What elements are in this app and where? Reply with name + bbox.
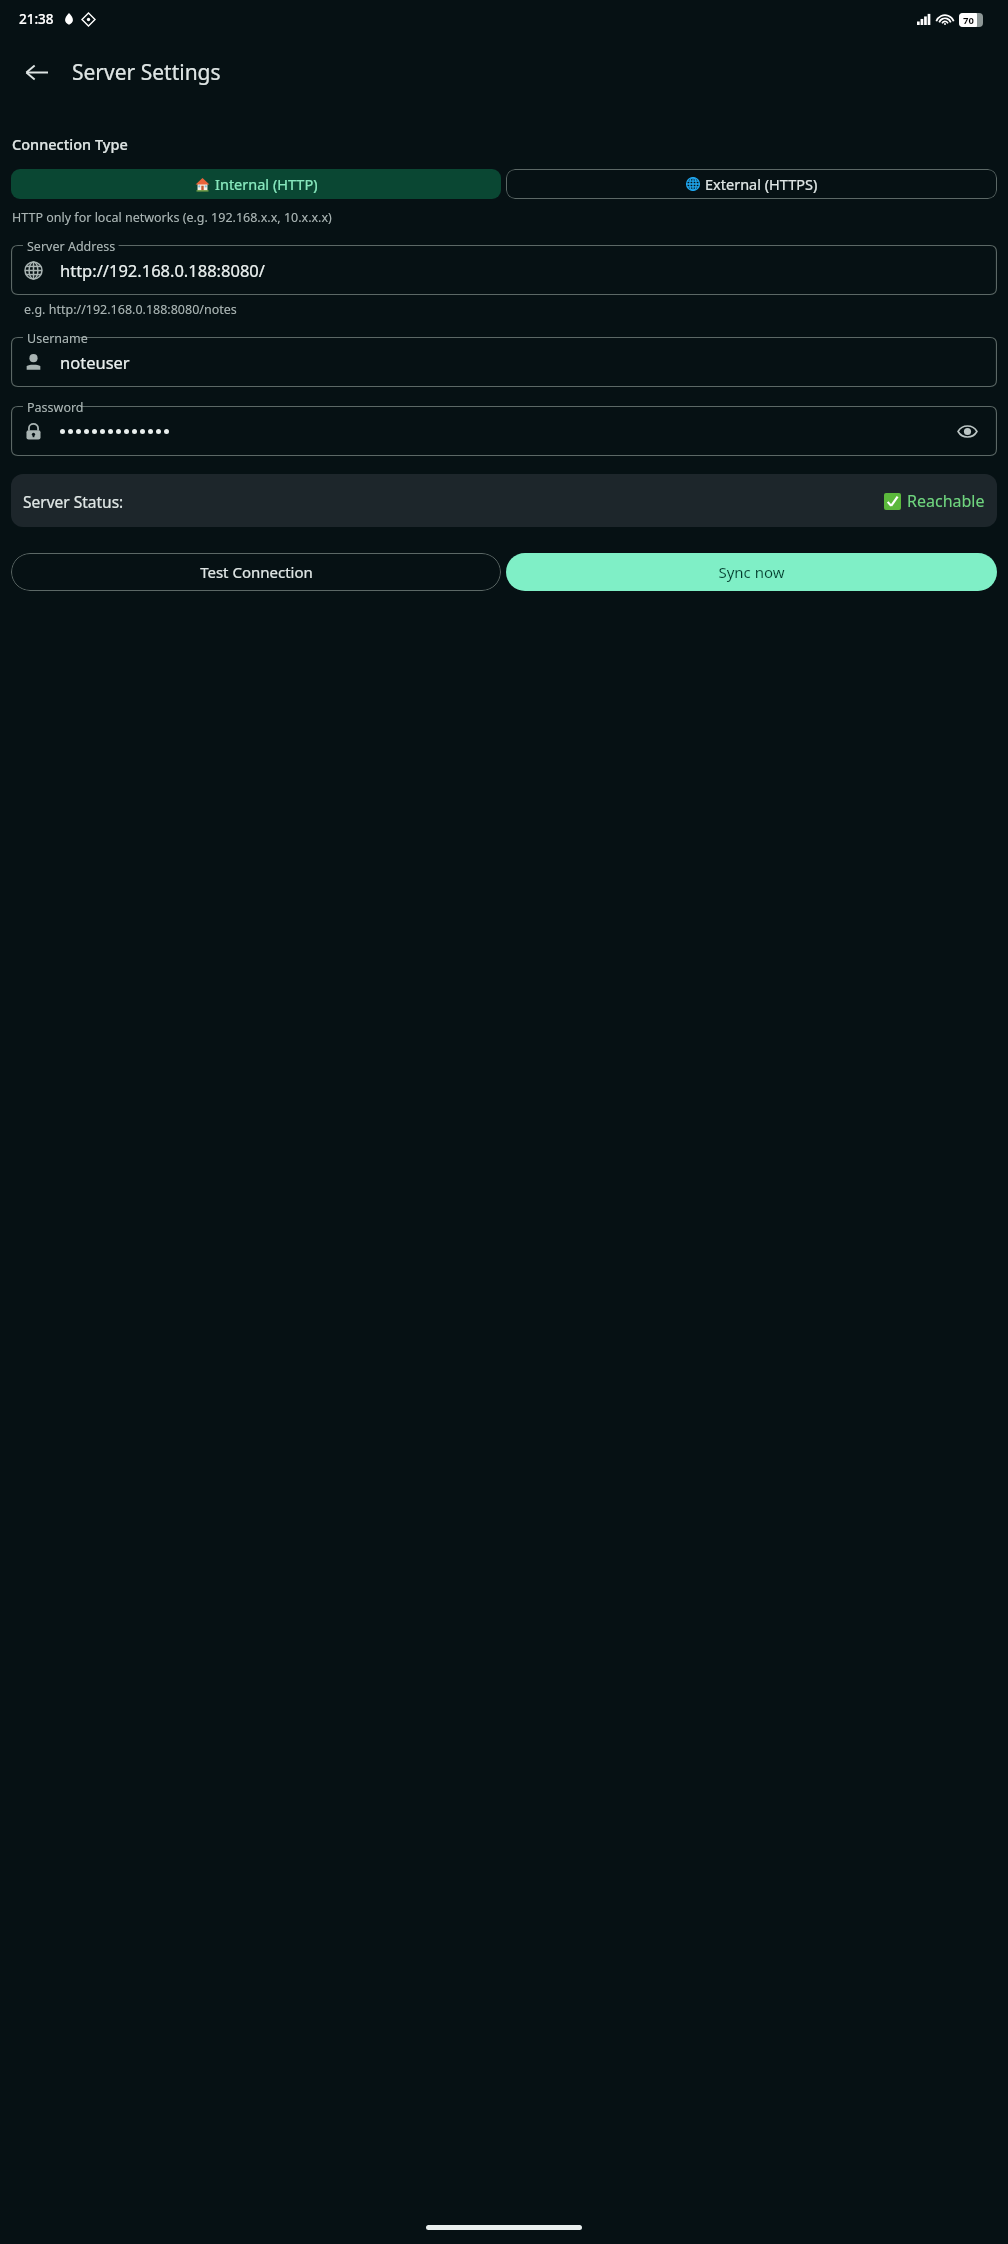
staticText: 70 (963, 14, 974, 27)
staticText: Reachable (907, 490, 985, 512)
button[interactable]: Back (12, 48, 60, 96)
staticText: Server Status: (23, 491, 124, 512)
staticText: Server Address (27, 238, 116, 255)
staticText: Test Connection (200, 562, 313, 582)
button[interactable]: Show password (950, 414, 984, 448)
staticText: Server Settings (72, 58, 221, 87)
staticText: Internal (HTTP) (215, 174, 318, 194)
staticText: 21:38 (19, 10, 54, 28)
button[interactable]: Sync now (506, 553, 997, 591)
staticText: Connection Type (12, 134, 128, 154)
staticText: http://192.168.0.188:8080/ (60, 259, 265, 281)
button[interactable]: External (HTTPS) (506, 169, 997, 199)
staticText: Password (27, 399, 84, 416)
staticText: Sync now (718, 562, 785, 582)
staticText: Username (27, 330, 88, 347)
button[interactable]: Internal (HTTP) (11, 169, 501, 199)
button[interactable]: Server Status: (11, 474, 997, 527)
staticText: External (HTTPS) (705, 174, 818, 194)
button[interactable]: Test Connection (11, 553, 501, 591)
staticText: HTTP only for local networks (e.g. 192.1… (12, 209, 332, 226)
staticText: noteuser (60, 351, 130, 373)
staticText: e.g. http://192.168.0.188:8080/notes (24, 301, 237, 318)
